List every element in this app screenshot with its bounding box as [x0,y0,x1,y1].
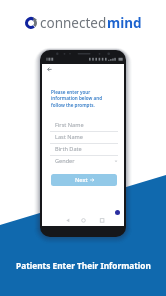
button[interactable]: Gender [50,156,118,168]
staticText: Patients Enter Their Information [16,260,151,271]
staticText: Gender [55,157,75,165]
staticText: First Name [55,121,84,129]
button[interactable]: Last Name [50,132,118,144]
button[interactable]: First Name [50,120,118,132]
staticText: Please enter your information below and … [51,89,103,109]
staticText: Birth Date [55,145,82,153]
button[interactable]: Next [51,174,117,186]
staticText: Next [75,176,88,184]
staticText: mind [107,14,142,32]
button[interactable]: Help [115,210,120,215]
staticText: connected [40,14,107,32]
button[interactable]: Birth Date [50,144,118,156]
staticText: Last Name [55,133,83,141]
button[interactable]: Back [43,64,55,76]
